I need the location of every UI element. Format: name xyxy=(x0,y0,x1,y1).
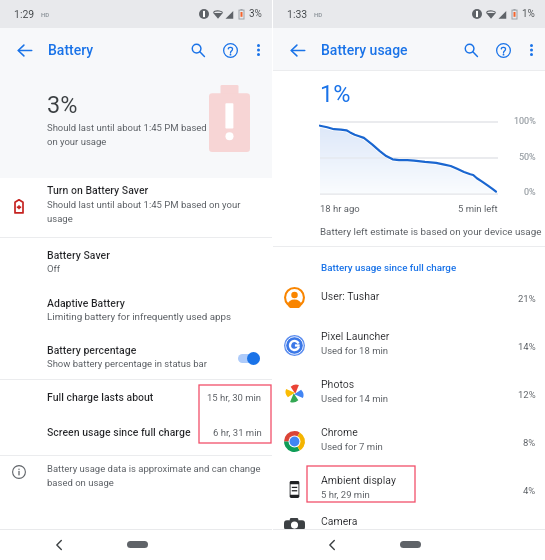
button[interactable]: Turn on Battery Saver xyxy=(0,178,272,237)
button[interactable]: Home xyxy=(127,541,148,548)
staticText: 8% xyxy=(523,437,536,448)
button[interactable]: Screen usage since full charge xyxy=(0,416,272,448)
button[interactable]: Ambient display xyxy=(273,466,545,514)
staticText: Battery usage xyxy=(321,42,408,58)
staticText: Battery usage data is approximate and ca… xyxy=(47,463,261,488)
button[interactable]: More options xyxy=(519,30,543,70)
button[interactable]: Search xyxy=(457,30,485,70)
button[interactable]: Help xyxy=(216,30,244,70)
staticText: Should last until about 1:45 PM based on… xyxy=(47,199,241,224)
staticText: Battery percentage xyxy=(47,344,137,356)
button[interactable]: Navigate up xyxy=(283,30,312,70)
button[interactable]: Back xyxy=(48,529,70,560)
staticText: 14% xyxy=(518,341,536,352)
staticText: HD xyxy=(314,11,323,18)
staticText: 6 hr, 31 min xyxy=(213,427,262,438)
staticText: Turn on Battery Saver xyxy=(47,184,149,196)
staticText: Screen usage since full charge xyxy=(47,426,191,438)
staticText: Battery xyxy=(48,42,94,58)
staticText: Show battery percentage in status bar xyxy=(47,358,207,369)
staticText: User: Tushar xyxy=(321,290,380,302)
button[interactable]: Search xyxy=(184,30,212,70)
staticText: 100% xyxy=(514,116,536,127)
staticText: Full charge lasts about xyxy=(47,391,154,403)
button[interactable]: Photos xyxy=(273,370,545,418)
button[interactable]: Battery percentage toggle xyxy=(230,334,266,382)
button[interactable]: Chrome xyxy=(273,418,545,466)
staticText: Pixel Launcher xyxy=(321,330,390,342)
button[interactable]: Battery usage since full charge xyxy=(321,262,457,273)
staticText: Battery Saver xyxy=(47,249,110,261)
button[interactable]: Help xyxy=(489,30,517,70)
staticText: 21% xyxy=(518,293,536,304)
staticText: Ambient display xyxy=(321,474,396,486)
staticText: 1:33 xyxy=(287,8,308,20)
button[interactable]: Home xyxy=(400,541,421,548)
staticText: 1:29 xyxy=(14,8,35,20)
staticText: 4% xyxy=(523,485,536,496)
staticText: Used for 7 min xyxy=(321,441,383,452)
button[interactable]: Pixel Launcher xyxy=(273,322,545,370)
staticText: 0% xyxy=(524,187,536,198)
staticText: Used for 18 min xyxy=(321,345,389,356)
staticText: 5 min left xyxy=(458,203,498,214)
staticText: Used for 14 min xyxy=(321,393,389,404)
staticText: 1% xyxy=(522,8,535,20)
staticText: 3% xyxy=(249,8,262,20)
staticText: 18 hr ago xyxy=(320,203,360,214)
staticText: 1% xyxy=(320,80,351,108)
button[interactable]: Battery Saver xyxy=(0,238,272,286)
button[interactable]: Full charge lasts about xyxy=(0,381,272,413)
staticText: 15 hr, 30 min xyxy=(207,392,262,403)
staticText: Battery left estimate is based on your d… xyxy=(320,226,542,237)
button[interactable]: Battery percentage xyxy=(0,334,272,382)
staticText: 5 hr, 29 min xyxy=(321,489,370,500)
staticText: Off xyxy=(47,263,61,274)
staticText: Limiting battery for infrequently used a… xyxy=(47,311,232,322)
staticText: 50% xyxy=(519,152,536,163)
staticText: Photos xyxy=(321,378,355,390)
staticText: Camera xyxy=(321,515,358,527)
button[interactable]: Camera xyxy=(273,510,545,529)
button[interactable]: Back xyxy=(321,529,343,560)
button[interactable]: More options xyxy=(246,30,270,70)
button[interactable]: Navigate up xyxy=(10,30,39,70)
staticText: 3% xyxy=(47,91,78,119)
staticText: Should last until about 1:45 PM based on… xyxy=(47,122,207,147)
staticText: HD xyxy=(41,11,50,18)
button[interactable]: User: Tushar xyxy=(273,274,545,322)
button[interactable]: Adaptive Battery xyxy=(0,286,272,334)
staticText: Chrome xyxy=(321,426,358,438)
staticText: Adaptive Battery xyxy=(47,297,125,309)
staticText: 12% xyxy=(518,389,536,400)
